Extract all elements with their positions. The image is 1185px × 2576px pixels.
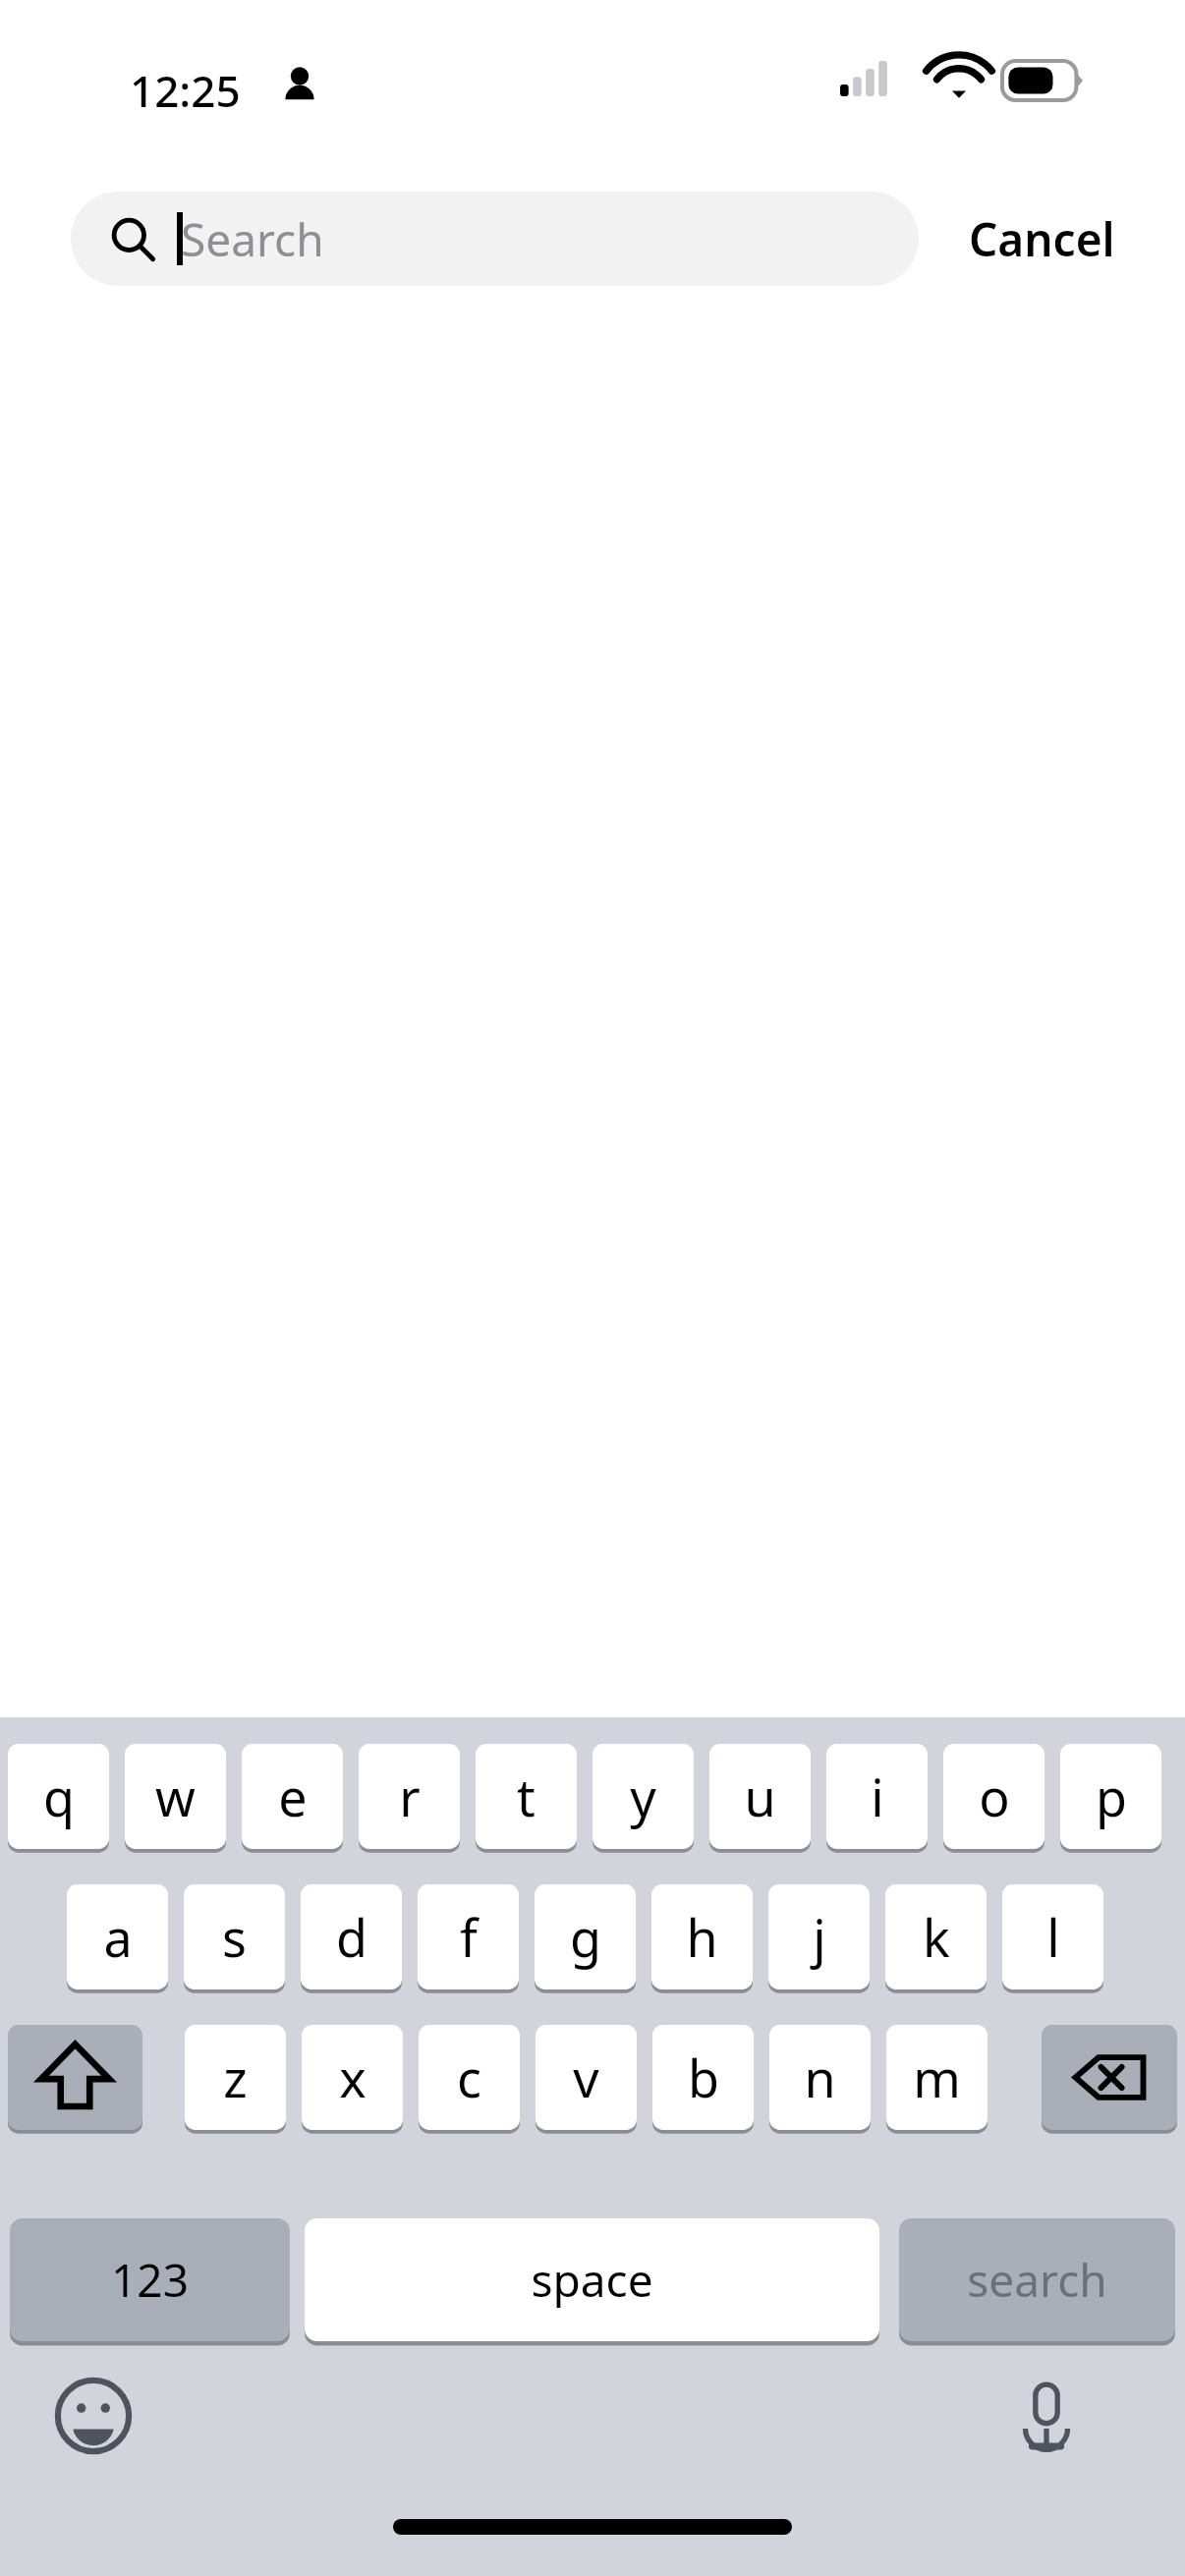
staticText: 123 (111, 2249, 189, 2311)
button[interactable]: k (885, 1884, 987, 1989)
button[interactable]: m (886, 2025, 987, 2130)
button[interactable]: z (185, 2025, 286, 2130)
staticText: k (923, 1902, 950, 1972)
button[interactable]: search (899, 2218, 1175, 2341)
staticText: f (460, 1902, 478, 1972)
button[interactable]: y (592, 1744, 694, 1849)
button[interactable]: s (184, 1884, 285, 1989)
button[interactable]: Search (71, 192, 919, 286)
staticText: t (517, 1762, 536, 1831)
button[interactable]: w (125, 1744, 226, 1849)
staticText: n (804, 2043, 836, 2112)
button[interactable]: c (419, 2025, 520, 2130)
button[interactable]: a (67, 1884, 168, 1989)
button[interactable]: b (652, 2025, 754, 2130)
staticText: d (336, 1902, 367, 1972)
staticText: q (43, 1762, 75, 1831)
staticText: o (979, 1762, 1010, 1831)
staticText: e (278, 1762, 308, 1831)
button[interactable]: e (242, 1744, 343, 1849)
button[interactable]: q (8, 1744, 109, 1849)
button[interactable]: n (769, 2025, 871, 2130)
button[interactable]: f (418, 1884, 519, 1989)
staticText: j (813, 1902, 826, 1972)
staticText: a (103, 1902, 133, 1972)
staticText: 12:25 (130, 61, 241, 120)
staticText: h (686, 1902, 718, 1972)
button[interactable]: t (476, 1744, 577, 1849)
button[interactable]: Emoji (51, 2374, 136, 2458)
staticText: r (399, 1762, 421, 1831)
staticText: w (155, 1762, 196, 1831)
staticText: p (1096, 1762, 1127, 1831)
button[interactable]: p (1060, 1744, 1161, 1849)
staticText: x (339, 2043, 367, 2112)
staticText: z (223, 2043, 248, 2112)
staticText: l (1046, 1902, 1060, 1972)
button[interactable]: g (535, 1884, 636, 1989)
staticText: u (744, 1762, 776, 1831)
staticText: Search (181, 208, 324, 270)
staticText: v (573, 2043, 599, 2112)
button[interactable]: Shift (8, 2025, 142, 2130)
staticText: search (967, 2249, 1107, 2311)
button[interactable]: x (302, 2025, 403, 2130)
button[interactable]: d (301, 1884, 402, 1989)
staticText: g (570, 1902, 601, 1972)
staticText: m (913, 2043, 961, 2112)
button[interactable]: j (768, 1884, 870, 1989)
button[interactable]: space (305, 2218, 879, 2341)
staticText: space (531, 2249, 653, 2311)
button[interactable]: h (651, 1884, 753, 1989)
staticText: b (688, 2043, 719, 2112)
button[interactable]: Backspace (1042, 2025, 1177, 2130)
button[interactable]: Cancel (951, 192, 1133, 286)
button[interactable]: i (826, 1744, 928, 1849)
button[interactable]: u (709, 1744, 811, 1849)
staticText: Cancel (969, 208, 1115, 270)
button[interactable]: Dictate (1004, 2374, 1089, 2458)
staticText: s (222, 1902, 247, 1972)
button[interactable]: l (1002, 1884, 1103, 1989)
button[interactable]: r (359, 1744, 460, 1849)
staticText: c (457, 2043, 481, 2112)
button[interactable]: o (943, 1744, 1044, 1849)
staticText: y (630, 1762, 656, 1831)
button[interactable]: v (536, 2025, 637, 2130)
staticText: i (871, 1762, 884, 1831)
button[interactable]: 123 (10, 2218, 290, 2341)
